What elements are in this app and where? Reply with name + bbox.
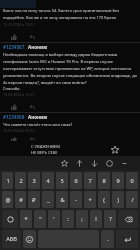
button[interactable]: 9 bbox=[112, 172, 124, 189]
staticText: _ bbox=[47, 196, 50, 204]
staticText: ) bbox=[117, 196, 119, 204]
button[interactable]: 6 bbox=[70, 172, 82, 189]
staticText: 7 bbox=[88, 177, 92, 185]
staticText: & bbox=[60, 196, 65, 204]
button[interactable]: ; bbox=[76, 210, 88, 228]
staticText: Необходима помощь в выборе между двумя б… bbox=[3, 52, 138, 86]
staticText: ! bbox=[95, 215, 97, 223]
button[interactable]: / bbox=[126, 191, 138, 208]
staticText: 5 bbox=[60, 177, 64, 185]
button[interactable]: Backspace bbox=[118, 210, 138, 228]
staticText: 9 bbox=[116, 177, 120, 185]
staticText: + bbox=[88, 196, 92, 204]
staticText: #1234568 bbox=[3, 114, 25, 120]
button[interactable]: - bbox=[70, 191, 82, 208]
staticText: ( bbox=[103, 196, 105, 204]
button[interactable]: 0 bbox=[126, 172, 138, 189]
button[interactable]: ! bbox=[90, 210, 102, 228]
staticText: Биотс как на кону тагося 54. Билеть срок… bbox=[3, 8, 138, 21]
button[interactable]: 5 bbox=[56, 172, 68, 189]
button[interactable]: # bbox=[15, 191, 26, 208]
button[interactable]: ) bbox=[112, 191, 124, 208]
staticText: 1 bbox=[6, 177, 10, 185]
staticText: 4 bbox=[46, 177, 50, 185]
button[interactable]: 3 bbox=[28, 172, 40, 189]
staticText: - bbox=[75, 196, 77, 204]
button[interactable]: 4 bbox=[42, 172, 54, 189]
staticText: # bbox=[19, 196, 23, 204]
button[interactable]: Move up bbox=[72, 156, 87, 170]
button[interactable]: Favorite bbox=[110, 145, 120, 155]
button[interactable]: : bbox=[62, 210, 74, 228]
staticText: 15.03.2024 в 12:55 bbox=[3, 92, 35, 97]
staticText: 16.03.2024 в 09:04 bbox=[3, 128, 35, 133]
staticText: НЕ ВЕРЬ СЕБЕ bbox=[31, 150, 58, 155]
button[interactable]: Reply bbox=[26, 101, 37, 112]
button[interactable]: ( bbox=[98, 191, 110, 208]
button[interactable]: Symbols bbox=[2, 210, 18, 228]
button[interactable]: ' bbox=[48, 210, 60, 228]
button[interactable]: #1234568 bbox=[0, 113, 140, 141]
button[interactable]: @ bbox=[2, 191, 13, 208]
staticText: 2 bbox=[19, 177, 23, 185]
button[interactable]: More bbox=[117, 156, 132, 170]
button[interactable]: ₽ bbox=[28, 191, 40, 208]
staticText: 6 bbox=[74, 177, 78, 185]
staticText: С УВАЖЕНИЕМ bbox=[31, 144, 60, 149]
staticText: / bbox=[131, 196, 134, 204]
staticText: " bbox=[39, 215, 42, 223]
staticText: #1234567 bbox=[3, 44, 25, 50]
button[interactable]: Emoji bbox=[23, 230, 36, 248]
staticText: @ bbox=[5, 196, 11, 204]
staticText: : bbox=[67, 215, 69, 223]
staticText: Аноним bbox=[28, 44, 48, 50]
button[interactable]: * bbox=[20, 210, 32, 228]
button[interactable]: + bbox=[84, 191, 96, 208]
button[interactable]: Reply bbox=[26, 137, 37, 141]
button[interactable]: Favorites bbox=[57, 156, 72, 170]
staticText: ; bbox=[81, 215, 83, 223]
staticText: Аноним bbox=[28, 114, 48, 120]
button[interactable]: . bbox=[101, 230, 114, 248]
button[interactable]: Stop bbox=[102, 156, 117, 170]
staticText: Спасибо. bbox=[3, 86, 21, 91]
staticText: 3 bbox=[32, 177, 36, 185]
button[interactable]: 7 bbox=[84, 172, 96, 189]
staticText: ' bbox=[53, 215, 55, 223]
button[interactable]: АБВ bbox=[2, 230, 21, 248]
button[interactable]: ? bbox=[104, 210, 116, 228]
button[interactable]: _ bbox=[42, 191, 54, 208]
button[interactable]: 2 bbox=[15, 172, 26, 189]
button[interactable]: Like bbox=[8, 137, 19, 141]
staticText: * bbox=[24, 215, 28, 223]
staticText: ₽ bbox=[32, 196, 36, 204]
button[interactable]: 1 bbox=[2, 172, 13, 189]
button[interactable]: Like bbox=[8, 31, 19, 42]
button[interactable]: Биотс как на кону тагося 54. Билеть срок… bbox=[0, 8, 140, 42]
button[interactable]: Move down bbox=[87, 156, 102, 170]
button[interactable]: & bbox=[56, 191, 68, 208]
staticText: ? bbox=[109, 215, 112, 223]
button[interactable]: " bbox=[34, 210, 46, 228]
button[interactable]: #1234567 bbox=[0, 43, 140, 112]
button[interactable]: Reply bbox=[26, 31, 37, 42]
staticText: 0 bbox=[130, 177, 134, 185]
staticText: Что скажете насчёт этого или сама? bbox=[3, 122, 73, 127]
staticText: 15.03.2024 в 12:03 bbox=[3, 22, 35, 27]
button[interactable]: Like bbox=[8, 101, 19, 112]
button[interactable]: 8 bbox=[98, 172, 110, 189]
staticText: 8 bbox=[102, 177, 106, 185]
staticText: . bbox=[107, 235, 109, 243]
staticText: АБВ bbox=[6, 235, 17, 243]
button[interactable]: Enter bbox=[116, 230, 138, 248]
